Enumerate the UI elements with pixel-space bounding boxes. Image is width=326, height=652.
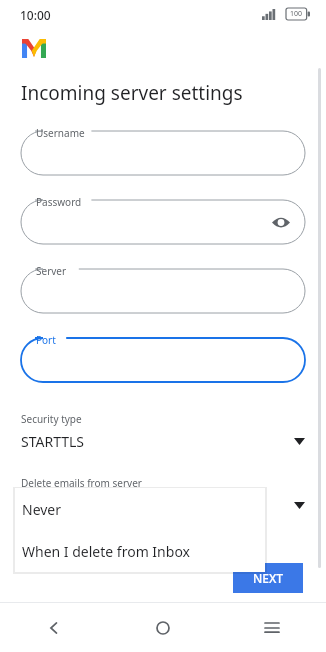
button[interactable]: When I delete from Inbox <box>15 530 265 572</box>
staticText: Username <box>36 126 85 140</box>
button[interactable] <box>21 492 305 518</box>
staticText: Security type <box>21 412 82 426</box>
staticText: Password <box>36 195 82 209</box>
button[interactable]: Back <box>0 603 108 652</box>
staticText: Incoming server settings <box>21 80 243 106</box>
button[interactable]: Show password <box>269 210 293 234</box>
button[interactable]: Home <box>108 603 217 652</box>
staticText: STARTTLS <box>21 432 85 451</box>
staticText: NEXT <box>253 570 284 586</box>
staticText: Delete emails from server <box>21 476 142 490</box>
button[interactable]: STARTTLS <box>21 428 305 454</box>
button[interactable]: Server <box>21 269 305 313</box>
staticText: Port <box>36 333 56 347</box>
staticText: When I delete from Inbox <box>22 542 190 561</box>
staticText: 100 <box>290 9 303 19</box>
staticText: Never <box>22 500 62 519</box>
button[interactable]: Port <box>21 338 305 382</box>
button[interactable]: NEXT <box>233 563 303 593</box>
button[interactable]: Password <box>21 200 305 244</box>
staticText: Server <box>36 264 67 278</box>
button[interactable]: Username <box>21 131 305 175</box>
button[interactable]: Never <box>15 488 265 530</box>
button[interactable]: Recent apps <box>217 603 326 652</box>
staticText: 10:00 <box>20 7 51 23</box>
